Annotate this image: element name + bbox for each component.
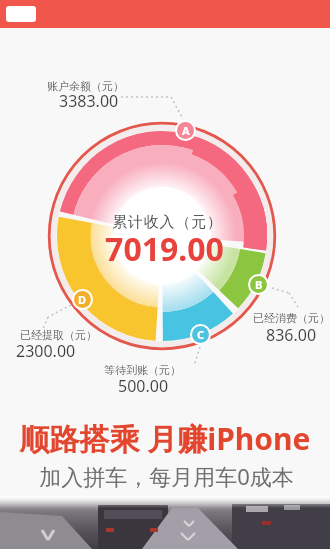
staticText: 等待到账（元） <box>104 363 181 377</box>
staticText: C <box>197 327 205 342</box>
button[interactable]: B <box>248 274 269 295</box>
staticText: B <box>255 277 263 292</box>
staticText: D <box>78 292 87 307</box>
staticText: 累计收入（元） <box>112 213 223 232</box>
staticText: 2300.00 <box>16 340 76 362</box>
staticText: 加入拼车，每月用车0成本 <box>39 461 294 491</box>
staticText: A <box>182 123 190 138</box>
staticText: 500.00 <box>118 375 169 397</box>
staticText: 账户余额（元） <box>47 79 124 93</box>
staticText: 3383.00 <box>59 90 119 112</box>
button[interactable]: C <box>190 324 211 345</box>
staticText: 7019.00 <box>105 227 224 271</box>
button[interactable] <box>0 0 330 28</box>
button[interactable] <box>6 6 36 22</box>
button[interactable]: A <box>175 120 196 141</box>
staticText: 已经消费（元） <box>253 311 330 325</box>
staticText: 顺路搭乘 月赚iPhone <box>19 418 311 459</box>
staticText: 已经提取（元） <box>20 328 97 342</box>
button[interactable]: D <box>72 289 93 310</box>
staticText: 836.00 <box>266 324 317 346</box>
